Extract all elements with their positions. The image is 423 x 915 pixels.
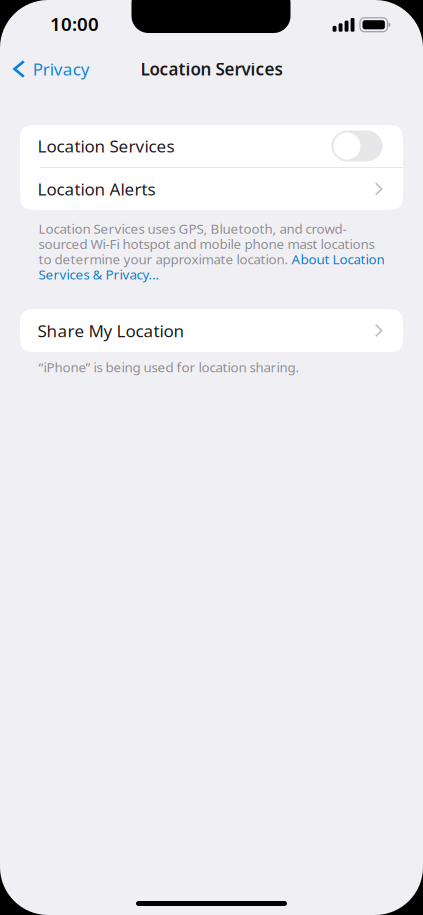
button[interactable]: Services & Privacy… [38, 265, 159, 284]
staticText: to determine your approximate location. [38, 250, 291, 268]
staticText: sourced Wi-Fi hotspot and mobile phone m… [38, 235, 374, 253]
button[interactable]: About Location [291, 250, 384, 268]
button[interactable]: Location Alerts [20, 168, 403, 210]
staticText: Privacy [33, 57, 90, 81]
staticText: Share My Location [37, 319, 184, 342]
staticText: About Location [291, 250, 384, 268]
staticText: 10:00 [50, 11, 99, 36]
staticText: Services & Privacy… [38, 265, 159, 284]
button[interactable]: Location Services [20, 125, 403, 167]
staticText: Location Alerts [37, 177, 155, 200]
staticText: Location Services uses GPS, Bluetooth, a… [38, 219, 346, 238]
staticText: Location Services [37, 134, 174, 158]
staticText: Location Services [140, 57, 282, 81]
staticText: “iPhone” is being used for location shar… [38, 358, 299, 376]
button[interactable]: Share My Location [20, 309, 403, 352]
button[interactable]: Privacy [0, 47, 104, 91]
